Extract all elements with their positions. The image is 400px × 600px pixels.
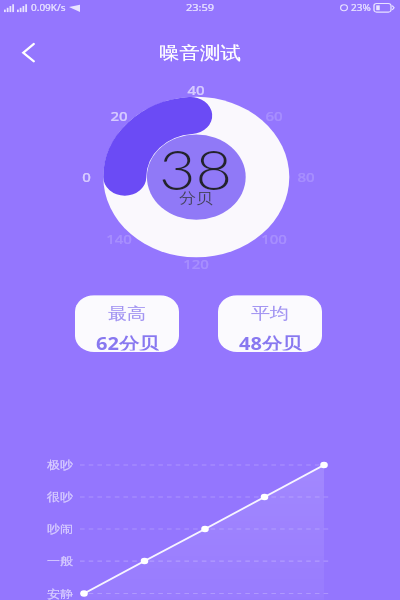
staticText: 48分贝	[239, 331, 302, 350]
staticText: 0.09K/s	[31, 2, 66, 14]
staticText: 140	[106, 230, 132, 248]
staticText: 平均	[251, 304, 289, 323]
staticText: 38	[159, 136, 233, 198]
button[interactable]: 最高	[75, 295, 179, 352]
staticText: 20	[110, 107, 128, 124]
staticText: 极吵	[47, 458, 73, 472]
staticText: 40	[187, 81, 205, 98]
staticText: 60	[265, 107, 283, 124]
staticText: 安静	[47, 587, 73, 600]
staticText: 最高	[108, 304, 146, 323]
staticText: 噪音测试	[159, 41, 241, 64]
staticText: 80	[297, 168, 315, 186]
button[interactable]: 平均	[218, 295, 322, 352]
button[interactable]: Back	[11, 38, 45, 67]
staticText: 很吵	[47, 490, 73, 504]
staticText: 一般	[47, 554, 73, 568]
staticText: 100	[261, 230, 287, 248]
staticText: 吵闹	[47, 522, 73, 536]
staticText: 23:59	[186, 1, 215, 14]
staticText: 0	[82, 168, 91, 186]
staticText: 分贝	[179, 189, 213, 207]
staticText: 120	[183, 255, 209, 273]
staticText: 62分贝	[96, 331, 159, 350]
staticText: 23%	[351, 2, 371, 14]
